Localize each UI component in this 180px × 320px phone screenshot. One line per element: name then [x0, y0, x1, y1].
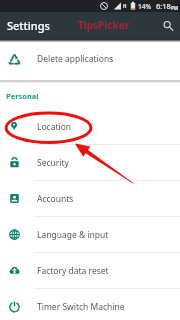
staticText: Personal [6, 91, 39, 101]
staticText: Accounts [37, 193, 74, 205]
button[interactable]: Factory data reset [0, 253, 180, 288]
staticText: Location [37, 121, 72, 133]
staticText: Factory data reset [37, 265, 109, 277]
button[interactable]: Language & input [0, 217, 180, 252]
staticText: TipsPicker [78, 18, 130, 32]
staticText: Language & input [37, 229, 109, 241]
staticText: H [123, 3, 127, 9]
button[interactable]: Search [156, 14, 180, 38]
staticText: Timer Switch Machine [37, 301, 125, 313]
button[interactable]: Accounts [0, 181, 180, 216]
staticText: 6:18 [156, 1, 171, 11]
button[interactable]: Security [0, 145, 180, 180]
button[interactable]: Delete applications [0, 38, 180, 80]
staticText: Delete applications [37, 53, 114, 65]
staticText: PM [171, 5, 179, 11]
staticText: Security [37, 157, 69, 169]
button[interactable]: Timer Switch Machine [0, 289, 180, 320]
button[interactable]: Location [0, 109, 180, 144]
staticText: Settings [7, 18, 50, 33]
staticText: 14% [138, 2, 151, 11]
